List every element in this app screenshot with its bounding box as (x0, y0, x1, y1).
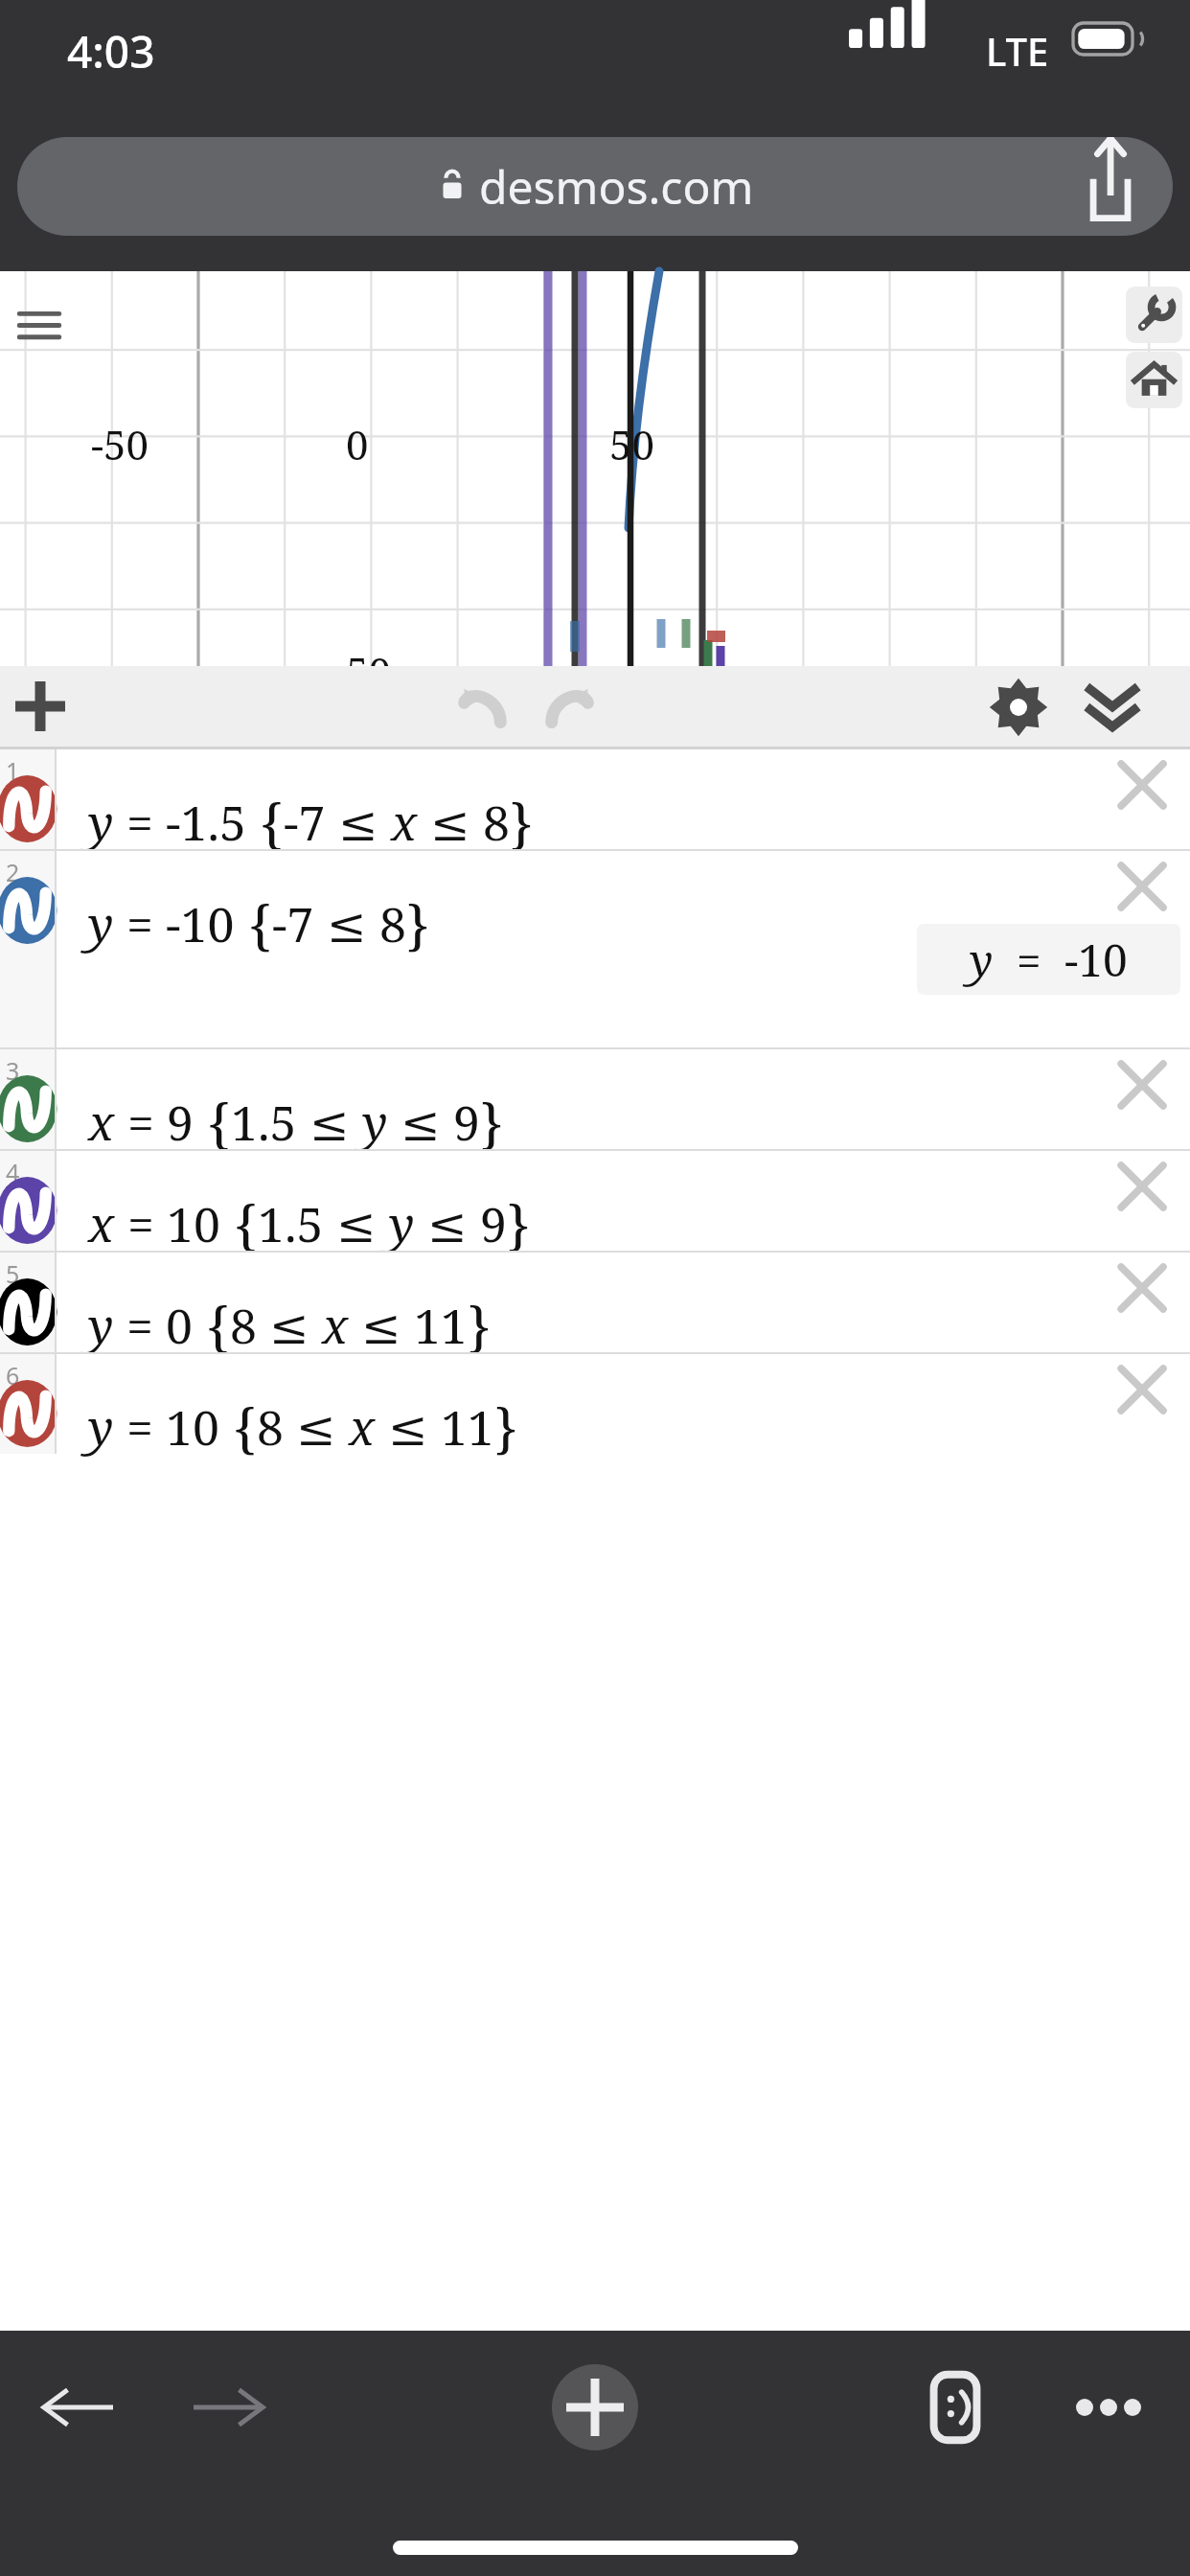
staticText: x (349, 1394, 388, 1460)
staticText: 1.5 (258, 1191, 336, 1256)
staticText: = (114, 1394, 166, 1460)
button[interactable]: 5 (0, 1253, 1190, 1352)
button[interactable]: Add expression (8, 674, 73, 739)
button[interactable]: desmos.com (17, 137, 1173, 236)
button[interactable]: New tab (514, 2331, 676, 2484)
staticText: 10 (166, 1394, 219, 1460)
staticText: 8 (257, 1394, 296, 1460)
button[interactable]: 2 (0, 851, 1190, 1047)
staticText: y (88, 1394, 114, 1460)
button[interactable]: Share (1062, 137, 1173, 236)
staticText: 4 (6, 1156, 20, 1188)
staticText: y (88, 790, 114, 855)
staticText: { (193, 1289, 230, 1362)
staticText: y (389, 1191, 427, 1256)
staticText: 1.5 (231, 1090, 309, 1155)
button[interactable]: Settings (987, 676, 1050, 739)
button[interactable]: Menu (11, 298, 67, 354)
staticText: ≤ 9 (427, 1191, 507, 1256)
staticText: } (510, 786, 533, 859)
staticText: = (114, 891, 166, 956)
staticText: ≤ 11 (388, 1394, 494, 1460)
staticText: } (468, 1289, 491, 1362)
button[interactable]: Collapse list (1081, 676, 1144, 739)
staticText: y (970, 930, 994, 990)
button[interactable]: More (1027, 2331, 1190, 2484)
staticText: 10 (167, 1191, 220, 1256)
staticText: ≤ 8 (430, 790, 510, 855)
button[interactable]: 6 (0, 1354, 1190, 1454)
staticText: x (88, 1090, 115, 1155)
staticText: -7 (284, 790, 338, 855)
staticText: 9 (167, 1090, 194, 1155)
staticText: -50 (333, 644, 391, 699)
staticText: -50 (91, 417, 149, 471)
button[interactable]: 1 (0, 749, 1190, 849)
staticText: ≤ (309, 1090, 362, 1155)
button[interactable]: Delete expression 6 (1098, 1354, 1190, 1454)
staticText: { (219, 1391, 257, 1463)
staticText: ≤ (338, 790, 391, 855)
button[interactable]: Graph settings (1126, 287, 1182, 343)
button[interactable]: Delete expression 4 (1098, 1151, 1190, 1251)
staticText: y (362, 1090, 400, 1155)
button[interactable]: Undo (450, 676, 514, 739)
button[interactable]: 4 (0, 1151, 1190, 1251)
staticText: ≤ (336, 1191, 389, 1256)
staticText: x (391, 790, 430, 855)
staticText: 50 (609, 417, 654, 471)
button[interactable]: Home (1126, 352, 1182, 408)
staticText: = (115, 1090, 167, 1155)
staticText: ≤ 8 (327, 891, 406, 956)
staticText: 2 (6, 856, 20, 888)
button[interactable]: Delete expression 3 (1098, 1049, 1190, 1149)
staticText: -10 (1064, 930, 1128, 990)
button[interactable]: Delete expression 5 (1098, 1253, 1190, 1352)
staticText: desmos.com (479, 155, 754, 218)
staticText: = (994, 930, 1064, 990)
staticText: = (114, 790, 166, 855)
staticText: ≤ 11 (361, 1293, 468, 1358)
staticText: ≤ (269, 1293, 322, 1358)
staticText: ≤ (296, 1394, 349, 1460)
staticText: 4:03 (67, 21, 155, 81)
staticText: y (88, 1293, 114, 1358)
staticText: { (235, 887, 272, 960)
staticText: } (494, 1391, 517, 1463)
staticText: -10 (166, 891, 235, 956)
staticText: = (115, 1191, 167, 1256)
staticText: 3 (6, 1054, 20, 1087)
staticText: 1 (6, 754, 20, 787)
button[interactable]: y (917, 924, 1180, 995)
button[interactable]: 3 (0, 1049, 1190, 1149)
staticText: y (88, 891, 114, 956)
staticText: 5 (6, 1257, 20, 1290)
staticText: ≤ 9 (400, 1090, 480, 1155)
button[interactable]: Tabs (883, 2331, 1027, 2484)
staticText: } (480, 1086, 503, 1159)
staticText: { (194, 1086, 231, 1159)
staticText: LTE (986, 25, 1049, 77)
button[interactable]: Delete expression 1 (1098, 749, 1190, 849)
staticText: 0 (166, 1293, 193, 1358)
staticText: } (507, 1187, 530, 1260)
staticText: x (88, 1191, 115, 1256)
button[interactable]: Delete expression 2 (1098, 851, 1190, 1047)
staticText: { (246, 786, 284, 859)
button[interactable]: Redo (538, 676, 602, 739)
staticText: { (220, 1187, 258, 1260)
staticText: 0 (346, 417, 369, 471)
staticText: = (114, 1293, 166, 1358)
staticText: } (406, 887, 429, 960)
staticText: 6 (6, 1359, 20, 1391)
staticText: -1.5 (166, 790, 246, 855)
button[interactable]: Back (0, 2331, 153, 2484)
button[interactable]: Forward (153, 2331, 307, 2484)
staticText: -7 (272, 891, 327, 956)
staticText: 8 (230, 1293, 269, 1358)
staticText: x (322, 1293, 361, 1358)
